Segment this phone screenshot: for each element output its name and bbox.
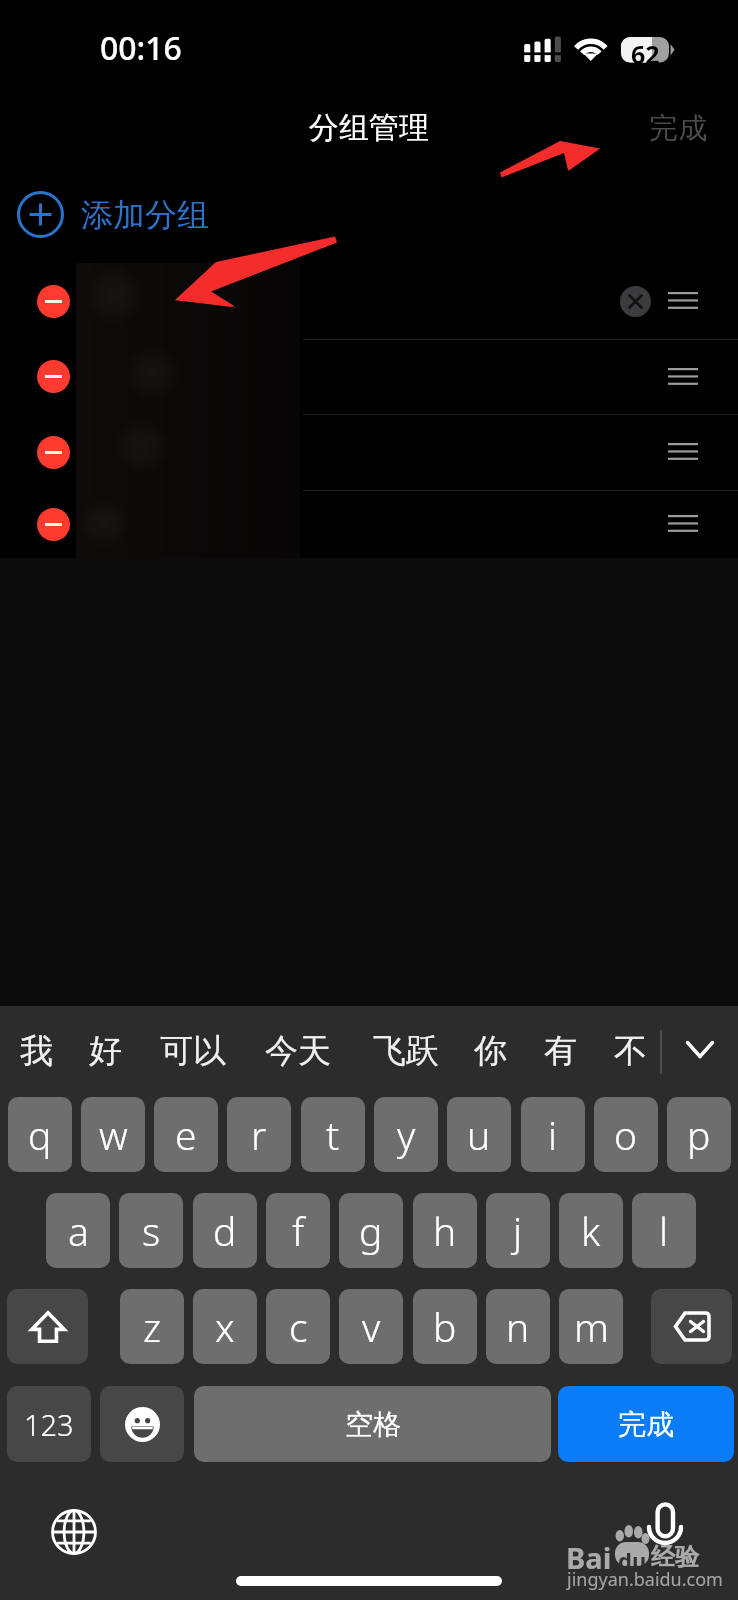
button[interactable]: 有 bbox=[529, 1010, 592, 1092]
staticText: t bbox=[326, 1108, 340, 1161]
button[interactable]: Clear text bbox=[620, 286, 651, 317]
button[interactable]: 飞跃 bbox=[358, 1010, 454, 1092]
button[interactable]: 完成 bbox=[558, 1386, 734, 1462]
staticText: i bbox=[548, 1108, 558, 1161]
button[interactable]: 你 bbox=[459, 1010, 522, 1092]
staticText: 完成 bbox=[649, 110, 707, 147]
button[interactable]: 空格 bbox=[194, 1386, 551, 1462]
staticText: j bbox=[513, 1204, 523, 1257]
button[interactable]: a bbox=[46, 1193, 110, 1268]
button[interactable]: e bbox=[154, 1097, 218, 1172]
button[interactable]: Hide keyboard bbox=[670, 1010, 730, 1088]
button[interactable]: 可以 bbox=[145, 1010, 241, 1092]
staticText: w bbox=[99, 1108, 128, 1161]
button[interactable]: Delete group bbox=[0, 414, 738, 490]
staticText: v bbox=[362, 1300, 381, 1353]
button[interactable]: j bbox=[486, 1193, 550, 1268]
button[interactable]: n bbox=[486, 1289, 550, 1364]
button[interactable]: m bbox=[559, 1289, 623, 1364]
staticText: h bbox=[433, 1204, 457, 1257]
staticText: 我 bbox=[20, 1030, 53, 1072]
button[interactable]: Delete group bbox=[0, 490, 738, 558]
button[interactable]: Reorder bbox=[654, 494, 712, 554]
staticText: a bbox=[68, 1204, 89, 1257]
button[interactable]: 123 bbox=[7, 1386, 91, 1462]
staticText: 00:16 bbox=[100, 26, 182, 70]
button[interactable]: b bbox=[413, 1289, 477, 1364]
button[interactable]: 好 bbox=[74, 1010, 137, 1092]
button[interactable]: Shift bbox=[7, 1289, 88, 1364]
staticText: 完成 bbox=[618, 1407, 674, 1442]
button[interactable]: w bbox=[81, 1097, 145, 1172]
button[interactable]: c bbox=[266, 1289, 330, 1364]
staticText: 空格 bbox=[345, 1407, 401, 1442]
button[interactable]: Backspace bbox=[651, 1289, 732, 1364]
staticText: b bbox=[433, 1300, 457, 1353]
button[interactable]: 我 bbox=[5, 1010, 68, 1092]
staticText: jingyan.baidu.com bbox=[567, 1567, 723, 1592]
button[interactable]: Delete group bbox=[37, 360, 70, 393]
staticText: 可以 bbox=[160, 1030, 226, 1072]
button[interactable]: Delete group bbox=[37, 508, 70, 541]
staticText: 今天 bbox=[265, 1030, 331, 1072]
button[interactable]: t bbox=[301, 1097, 365, 1172]
button[interactable]: i bbox=[521, 1097, 585, 1172]
button[interactable]: d bbox=[193, 1193, 257, 1268]
button[interactable]: y bbox=[374, 1097, 438, 1172]
staticText: e bbox=[175, 1108, 197, 1161]
staticText: z bbox=[143, 1300, 162, 1353]
button[interactable]: Delete group bbox=[37, 285, 70, 318]
button[interactable]: r bbox=[227, 1097, 291, 1172]
staticText: q bbox=[28, 1108, 52, 1161]
button[interactable]: z bbox=[120, 1289, 184, 1364]
button[interactable]: Delete group bbox=[37, 436, 70, 469]
staticText: o bbox=[614, 1108, 638, 1161]
staticText: 不 bbox=[614, 1030, 647, 1072]
staticText: r bbox=[251, 1108, 267, 1161]
button[interactable]: h bbox=[413, 1193, 477, 1268]
staticText: 经验 bbox=[651, 1542, 699, 1572]
staticText: 分组管理 bbox=[309, 109, 429, 147]
staticText: 好 bbox=[89, 1030, 122, 1072]
button[interactable]: p bbox=[667, 1097, 731, 1172]
button[interactable]: Reorder bbox=[654, 422, 712, 482]
staticText: m bbox=[574, 1300, 609, 1353]
staticText: y bbox=[397, 1108, 416, 1161]
button[interactable]: l bbox=[632, 1193, 696, 1268]
button[interactable]: k bbox=[559, 1193, 623, 1268]
button[interactable]: u bbox=[447, 1097, 511, 1172]
button[interactable]: s bbox=[119, 1193, 183, 1268]
button[interactable]: g bbox=[339, 1193, 403, 1268]
button[interactable]: x bbox=[193, 1289, 257, 1364]
button[interactable]: Reorder bbox=[654, 347, 712, 407]
button[interactable]: q bbox=[8, 1097, 72, 1172]
button[interactable]: Emoji bbox=[100, 1386, 184, 1462]
staticText: g bbox=[359, 1204, 383, 1257]
staticText: u bbox=[467, 1108, 491, 1161]
staticText: k bbox=[581, 1204, 601, 1257]
button[interactable]: Delete group bbox=[0, 339, 738, 414]
staticText: n bbox=[506, 1300, 530, 1353]
button[interactable]: Reorder bbox=[654, 271, 712, 331]
button[interactable]: Delete group bbox=[0, 263, 738, 339]
staticText: 添加分组 bbox=[81, 195, 209, 235]
staticText: 123 bbox=[24, 1405, 74, 1444]
staticText: c bbox=[289, 1300, 308, 1353]
button[interactable]: 添加分组 bbox=[0, 178, 738, 250]
button[interactable]: 完成 bbox=[618, 100, 738, 157]
button[interactable]: o bbox=[594, 1097, 658, 1172]
button[interactable]: Change keyboard language bbox=[44, 1502, 104, 1562]
staticText: 有 bbox=[544, 1030, 577, 1072]
button[interactable]: 今天 bbox=[249, 1010, 346, 1092]
staticText: f bbox=[292, 1204, 305, 1257]
button[interactable]: 不 bbox=[599, 1010, 662, 1092]
staticText: 你 bbox=[474, 1030, 507, 1072]
staticText: x bbox=[215, 1300, 235, 1353]
staticText: l bbox=[659, 1204, 669, 1257]
staticText: p bbox=[687, 1108, 711, 1161]
button[interactable]: v bbox=[339, 1289, 403, 1364]
staticText: s bbox=[142, 1204, 161, 1257]
staticText: 飞跃 bbox=[373, 1030, 439, 1072]
button[interactable]: f bbox=[266, 1193, 330, 1268]
staticText: 62 bbox=[631, 37, 660, 63]
